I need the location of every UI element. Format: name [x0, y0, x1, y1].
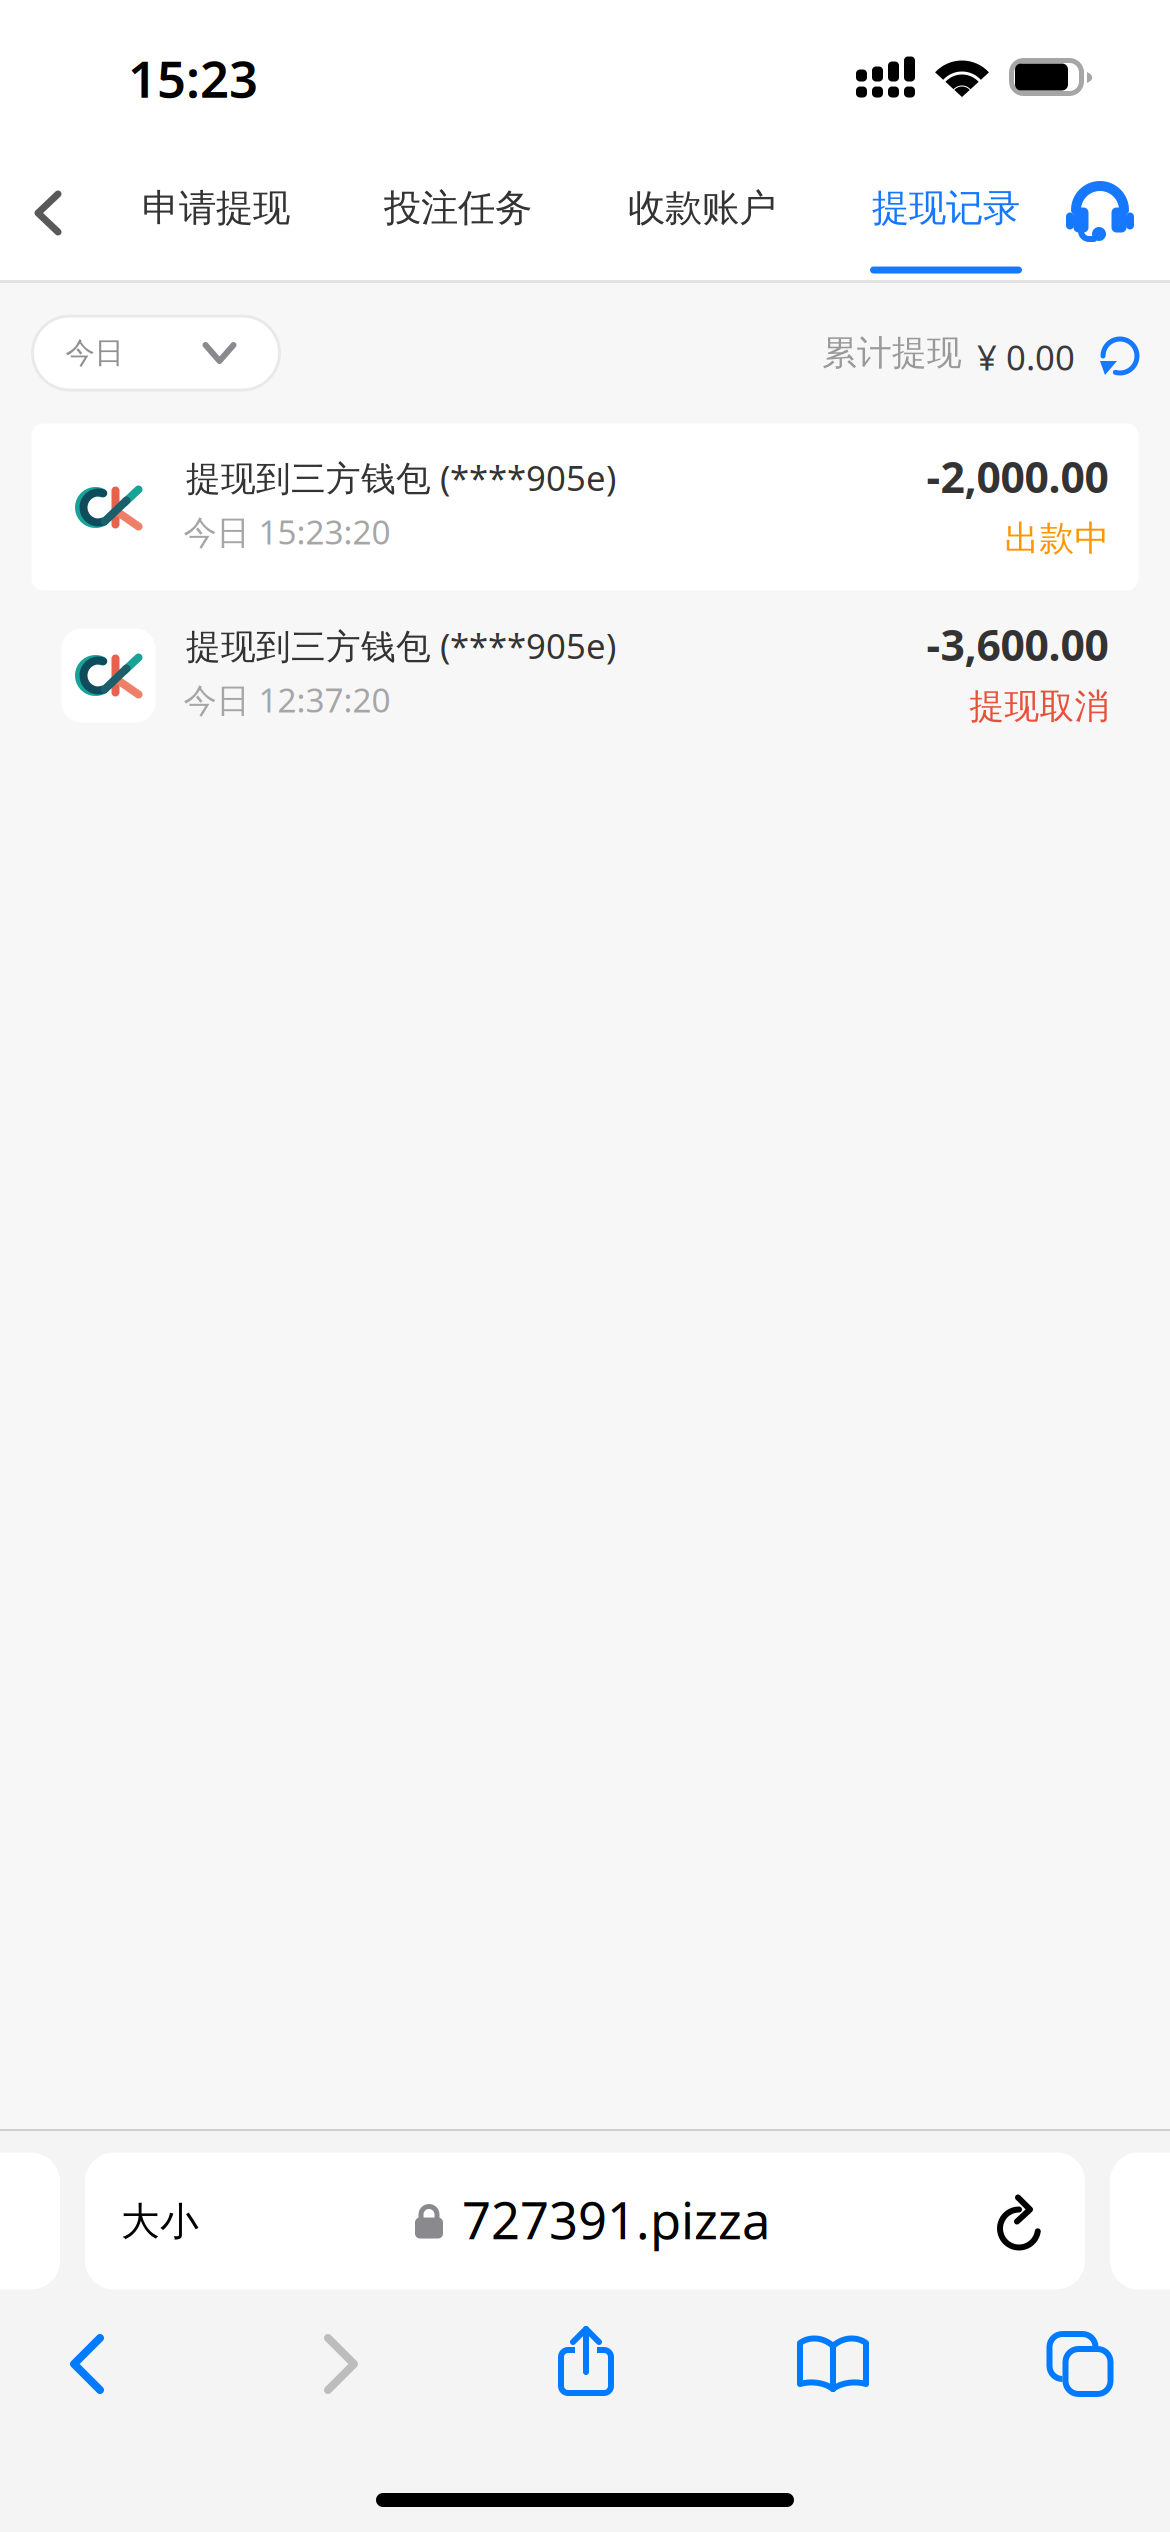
button[interactable]: 收款账户: [602, 146, 802, 280]
staticText: -2,000.00: [926, 448, 1108, 505]
staticText: 收款账户: [628, 185, 776, 231]
staticText: 大小: [121, 2198, 199, 2245]
button[interactable]: 提现到三方钱包 (****905e): [31, 423, 1138, 590]
button[interactable]: 申请提现: [116, 146, 316, 280]
button[interactable]: Tabs: [1010, 2309, 1150, 2419]
staticText: -3,600.00: [926, 616, 1108, 673]
staticText: 提现取消: [969, 685, 1109, 728]
staticText: 今日 12:37:20: [183, 677, 390, 722]
button[interactable]: Back: [17, 2309, 157, 2419]
staticText: 今日 15:23:20: [183, 509, 390, 554]
staticText: 出款中: [1004, 517, 1109, 560]
staticText: 15:23: [128, 44, 258, 112]
button[interactable]: 提现到三方钱包 (****905e): [31, 591, 1138, 758]
staticText: 投注任务: [384, 185, 532, 231]
button[interactable]: Back: [0, 146, 96, 280]
staticText: 今日: [65, 335, 123, 371]
button[interactable]: Refresh: [1090, 326, 1150, 386]
staticText: 727391.pizza: [462, 2186, 770, 2253]
button[interactable]: 大小: [85, 2152, 1085, 2289]
button[interactable]: 投注任务: [358, 146, 558, 280]
staticText: 申请提现: [142, 185, 290, 231]
staticText: 提现到三方钱包 (****905e): [186, 454, 616, 500]
button[interactable]: Bookmarks: [763, 2308, 903, 2418]
button[interactable]: Forward: [271, 2309, 411, 2419]
staticText: ¥ 0.00: [977, 334, 1075, 380]
staticText: 累计提现: [822, 332, 962, 374]
button[interactable]: 提现记录: [846, 146, 1046, 280]
staticText: 提现到三方钱包 (****905e): [186, 622, 616, 668]
staticText: 提现记录: [872, 185, 1020, 231]
button[interactable]: Share: [516, 2305, 656, 2415]
button[interactable]: Customer service: [1052, 146, 1148, 280]
button[interactable]: 今日: [32, 316, 279, 390]
